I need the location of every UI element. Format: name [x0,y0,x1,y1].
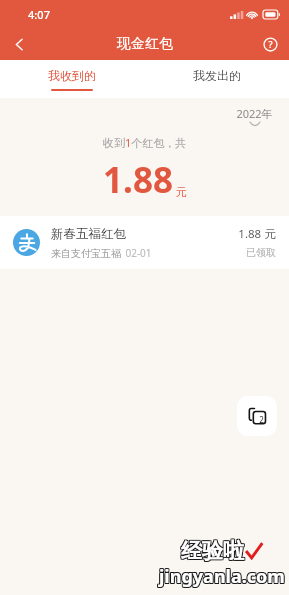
button[interactable]: 2022年 [232,105,277,127]
staticText: jingyanla.com [159,563,285,588]
staticText: jingyanla.com [160,564,286,589]
staticText: jingyanla.com [158,563,284,588]
staticText: 我发出的 [193,68,241,83]
button[interactable]: 我收到的 [0,60,144,98]
staticText: 经验啦 [182,537,245,563]
staticText: 经验啦 [180,538,243,564]
staticText: ? [268,38,273,50]
staticText: jingyanla.com [160,563,286,588]
staticText: 2 [259,414,264,425]
staticText: 我收到的 [48,68,96,83]
staticText: 经验啦 [181,539,244,565]
staticText: jingyanla.com [160,565,286,590]
staticText: 经验啦 [181,537,244,563]
staticText: jingyanla.com [158,564,284,589]
staticText: jingyanla.com [159,564,285,589]
staticText: 经验啦 [182,538,245,564]
button[interactable]: Back [0,28,38,60]
staticText: 4:07 [28,7,50,22]
staticText: 经验啦 [180,539,243,565]
staticText: 2022年 [236,106,273,121]
staticText: 来自支付宝五福 [51,247,121,260]
staticText: 已领取 [246,246,276,259]
staticText: 现金红包 [117,35,173,53]
staticText: 1.88 [103,156,173,204]
staticText: 经验啦 [180,537,243,563]
staticText: 收到1个红包，共 [103,135,187,150]
staticText: jingyanla.com [158,565,284,590]
staticText: 经验啦 [182,539,245,565]
button[interactable]: Open tabs, 2 [237,396,277,436]
button[interactable]: Help [251,28,289,60]
button[interactable]: 我发出的 [144,60,289,98]
staticText: 新春五福红包 [51,226,126,242]
staticText: 1.88 元 [238,226,276,242]
staticText: 元 [176,185,187,199]
button[interactable]: 新春五福红包 [0,216,289,269]
staticText: 经验啦 [181,538,244,564]
staticText: 02-01 [125,246,152,260]
staticText: jingyanla.com [159,565,285,590]
